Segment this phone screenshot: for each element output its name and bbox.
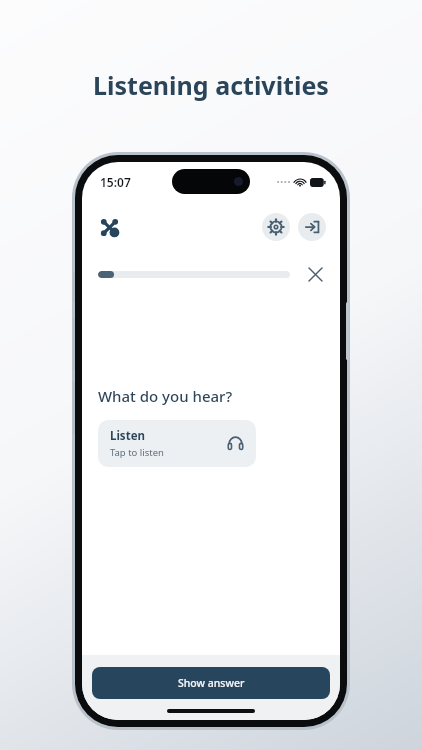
button[interactable]: Settings — [262, 213, 290, 241]
staticText: Show answer — [178, 676, 245, 690]
button[interactable]: App logo — [96, 214, 122, 240]
staticText: Listening activities — [93, 68, 329, 102]
button[interactable]: Listen — [98, 420, 256, 467]
staticText: 15:07 — [100, 174, 131, 190]
button[interactable]: Close — [302, 261, 328, 287]
staticText: What do you hear? — [98, 386, 233, 406]
staticText: Tap to listen — [110, 446, 164, 459]
button[interactable]: Log in — [298, 213, 326, 241]
button[interactable]: Show answer — [92, 667, 330, 699]
staticText: Listen — [110, 428, 145, 444]
